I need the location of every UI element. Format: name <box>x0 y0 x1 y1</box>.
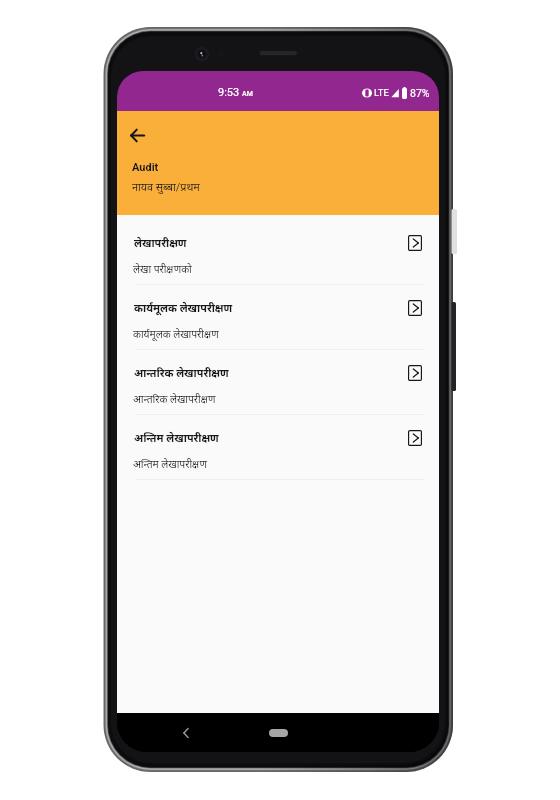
staticText: 87% <box>410 87 430 99</box>
staticText: आन्तरिक लेखापरीक्षण <box>134 365 229 380</box>
button[interactable]: आन्तरिक लेखापरीक्षण <box>117 350 439 415</box>
button[interactable]: अन्तिम लेखापरीक्षण <box>117 415 439 480</box>
staticText: अन्तिम लेखापरीक्षण <box>133 457 207 471</box>
staticText: लेखापरीक्षण <box>134 235 187 250</box>
staticText: नायव सुब्बा/प्रथम <box>132 179 200 194</box>
staticText: Audit <box>132 161 159 174</box>
button[interactable]: Back <box>119 117 156 154</box>
button[interactable]: Back <box>171 718 201 748</box>
staticText: कार्यमूलक लेखापरीक्षण <box>134 300 233 315</box>
button[interactable]: Home <box>263 722 294 744</box>
staticText: 9:53 <box>218 86 240 99</box>
button[interactable]: कार्यमूलक लेखापरीक्षण <box>117 285 439 350</box>
staticText: अन्तिम लेखापरीक्षण <box>134 430 219 445</box>
staticText: लेखा परीक्षणको <box>133 262 192 276</box>
staticText: LTE <box>374 87 389 98</box>
button[interactable]: लेखापरीक्षण <box>117 220 439 285</box>
staticText: आन्तरिक लेखापरीक्षण <box>133 392 216 406</box>
staticText: AM <box>242 90 253 98</box>
staticText: कार्यमूलक लेखापरीक्षण <box>133 327 219 341</box>
